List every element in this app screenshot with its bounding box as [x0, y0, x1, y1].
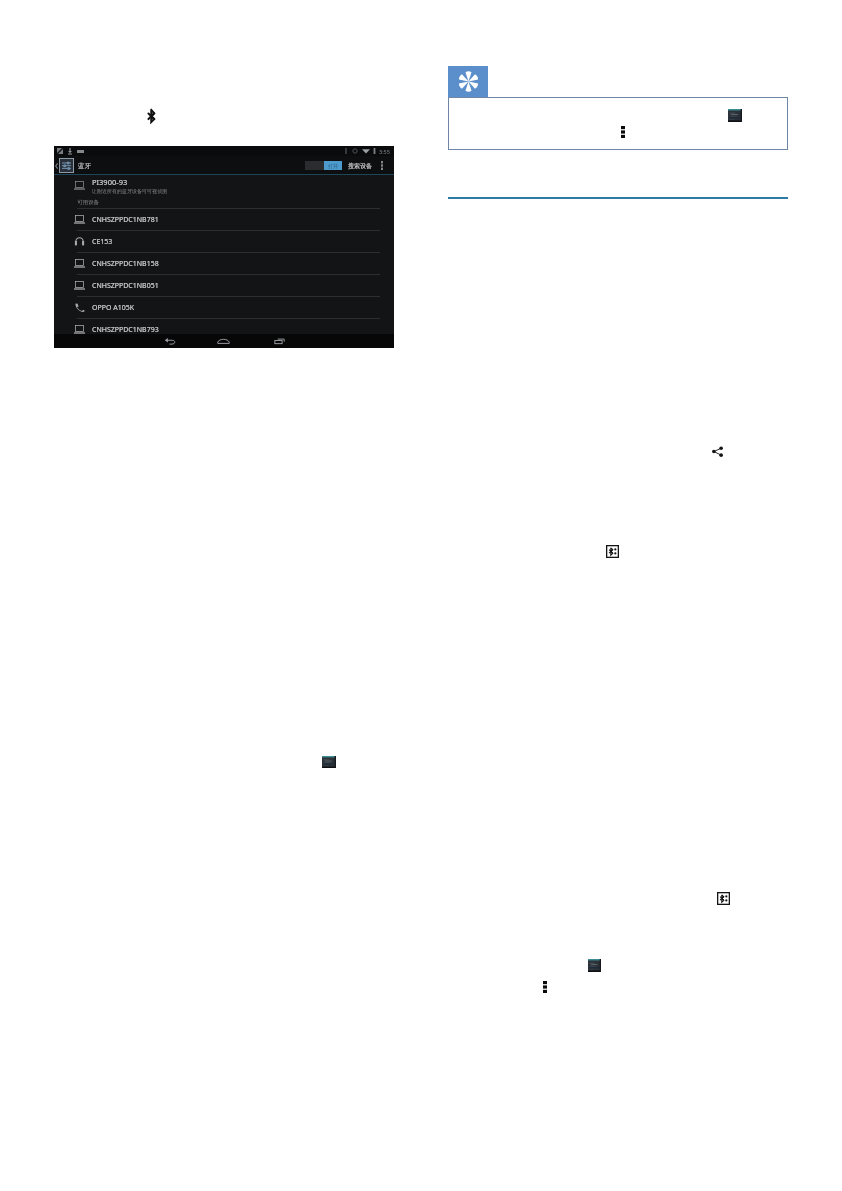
button[interactable]: Share: [711, 445, 724, 458]
staticText: CNHSZPPDC1NB158: [92, 259, 159, 269]
button[interactable]: PI3900-93: [54, 175, 394, 196]
button[interactable]: Home: [217, 335, 230, 347]
button[interactable]: Bluetooth settings: [717, 892, 730, 905]
button[interactable]: More options: [381, 161, 383, 170]
staticText: 打开: [328, 163, 338, 169]
button[interactable]: OPPO A105K: [54, 297, 394, 318]
staticText: 搜索设备: [348, 162, 372, 170]
button[interactable]: More options: [621, 126, 625, 138]
staticText: CE153: [92, 237, 113, 247]
button[interactable]: CNHSZPPDC1NB781: [54, 209, 394, 230]
button[interactable]: Recent apps: [273, 335, 286, 347]
button[interactable]: CNHSZPPDC1NB051: [54, 275, 394, 296]
button[interactable]: CNHSZPPDC1NB793: [54, 319, 394, 340]
button[interactable]: Back: [54, 160, 59, 172]
button[interactable]: Bluetooth settings app: [59, 158, 74, 173]
staticText: 3:55: [379, 148, 390, 155]
button[interactable]: CNHSZPPDC1NB158: [54, 253, 394, 274]
button[interactable]: More options: [543, 981, 547, 993]
staticText: OPPO A105K: [92, 303, 135, 313]
button[interactable]: 搜索设备: [348, 156, 372, 175]
staticText: CNHSZPPDC1NB781: [92, 215, 159, 225]
staticText: CNHSZPPDC1NB793: [92, 325, 159, 335]
button[interactable]: Screenshot thumbnail: [728, 109, 742, 122]
staticText: 可用设备: [77, 199, 99, 206]
button[interactable]: CE153: [54, 231, 394, 252]
staticText: PI3900-93: [92, 177, 128, 187]
staticText: 蓝牙: [78, 162, 91, 170]
button[interactable]: Back: [164, 335, 177, 347]
button[interactable]: Screenshot thumbnail: [588, 959, 601, 972]
staticText: 让附近所有的蓝牙设备可可视侦测: [92, 188, 167, 194]
button[interactable]: Bluetooth toggle: [305, 156, 342, 175]
staticText: CNHSZPPDC1NB051: [92, 281, 159, 291]
button[interactable]: Bluetooth settings: [606, 545, 619, 558]
button[interactable]: Screenshot thumbnail: [322, 756, 336, 768]
